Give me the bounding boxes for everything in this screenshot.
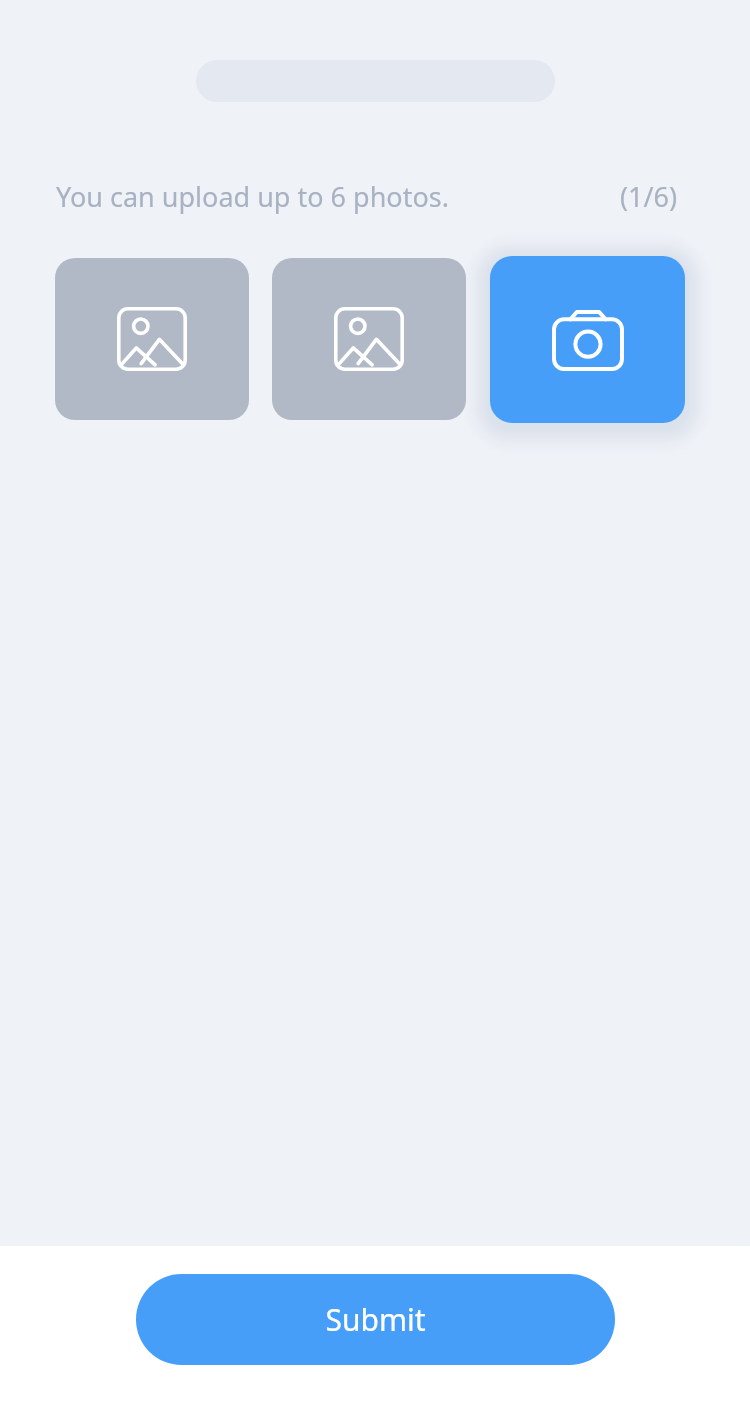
- button[interactable]: Submit: [136, 1274, 615, 1365]
- button[interactable]: [55, 258, 249, 420]
- button[interactable]: [272, 258, 466, 420]
- staticText: (1/6): [620, 178, 678, 215]
- staticText: Submit: [325, 1299, 426, 1340]
- button[interactable]: Take photo: [490, 256, 685, 423]
- staticText: You can upload up to 6 photos.: [56, 178, 449, 215]
